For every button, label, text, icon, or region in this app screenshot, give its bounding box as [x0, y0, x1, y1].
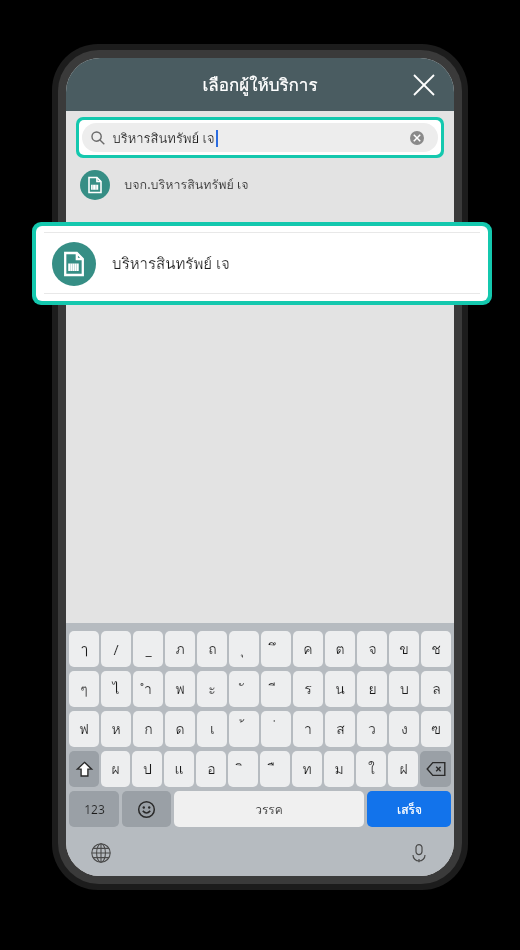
- button[interactable]: _: [133, 631, 163, 667]
- button[interactable]: ค: [293, 631, 323, 667]
- staticText: ท: [302, 758, 312, 780]
- button[interactable]: ่: [261, 711, 291, 747]
- button[interactable]: ร: [293, 671, 323, 707]
- staticText: ย: [368, 678, 377, 700]
- button[interactable]: พ: [165, 671, 195, 707]
- staticText: เ: [210, 718, 215, 740]
- staticText: ใ: [368, 758, 375, 780]
- staticText: 123: [84, 801, 105, 817]
- staticText: เสร็จ: [397, 800, 422, 819]
- staticText: จ: [368, 638, 377, 660]
- button[interactable]: ี: [261, 671, 291, 707]
- button[interactable]: บจก.บริหารสินทรัพย์ เจ: [66, 164, 454, 206]
- button[interactable]: ใ: [356, 751, 386, 787]
- button[interactable]: Change keyboard language: [82, 834, 120, 872]
- staticText: ผ: [111, 758, 120, 780]
- button[interactable]: ส: [325, 711, 355, 747]
- button[interactable]: ฝ: [388, 751, 418, 787]
- staticText: บริหารสินทรัพย์ เจ: [112, 252, 230, 276]
- staticText: า: [304, 718, 312, 740]
- button[interactable]: บริหารสินทรัพย์ เจ: [82, 123, 438, 152]
- staticText: ช: [431, 638, 441, 660]
- button[interactable]: Clear text: [405, 126, 429, 150]
- button[interactable]: ะ: [197, 671, 227, 707]
- button[interactable]: ฃ: [421, 711, 451, 747]
- button[interactable]: Close: [402, 63, 446, 107]
- button[interactable]: ม: [324, 751, 354, 787]
- staticText: ต: [335, 638, 345, 660]
- staticText: ป: [143, 758, 152, 780]
- staticText: ๅ: [81, 638, 88, 660]
- staticText: ส: [336, 718, 345, 740]
- button[interactable]: ก: [133, 711, 163, 747]
- staticText: ฃ: [431, 718, 441, 740]
- button[interactable]: ิ: [228, 751, 258, 787]
- button[interactable]: น: [325, 671, 355, 707]
- staticText: บริหารสินทรัพย์ เจ: [112, 128, 215, 149]
- staticText: ภ: [175, 638, 185, 660]
- staticText: ำ: [144, 678, 152, 700]
- button[interactable]: ุ: [229, 631, 259, 667]
- staticText: ล: [432, 678, 441, 700]
- button[interactable]: ฟ: [69, 711, 99, 747]
- staticText: เลือกผู้ให้บริการ: [202, 71, 318, 98]
- button[interactable]: วรรค: [174, 791, 364, 827]
- staticText: ฝ: [399, 758, 408, 780]
- button[interactable]: ท: [292, 751, 322, 787]
- button[interactable]: Emoji: [122, 791, 171, 827]
- button[interactable]: ป: [132, 751, 162, 787]
- button[interactable]: ง: [389, 711, 419, 747]
- button[interactable]: Voice input: [400, 834, 438, 872]
- staticText: วรรค: [255, 800, 283, 819]
- staticText: ม: [334, 758, 344, 780]
- staticText: ค: [303, 638, 313, 660]
- staticText: อ: [207, 758, 216, 780]
- button[interactable]: เ: [197, 711, 227, 747]
- staticText: ไ: [112, 678, 120, 700]
- button[interactable]: ย: [357, 671, 387, 707]
- button[interactable]: า: [293, 711, 323, 747]
- staticText: น: [335, 678, 345, 700]
- button[interactable]: ด: [165, 711, 195, 747]
- button[interactable]: ั: [229, 671, 259, 707]
- staticText: ก: [144, 718, 153, 740]
- staticText: แ: [174, 758, 184, 780]
- button[interactable]: ไ: [101, 671, 131, 707]
- button[interactable]: ึ: [261, 631, 291, 667]
- button[interactable]: ต: [325, 631, 355, 667]
- staticText: ร: [304, 678, 312, 700]
- staticText: ฟ: [79, 718, 89, 740]
- staticText: ห: [111, 718, 121, 740]
- staticText: ด: [175, 718, 185, 740]
- button[interactable]: 123: [69, 791, 119, 827]
- staticText: บจก.บริหารสินทรัพย์ เจ: [124, 175, 249, 195]
- button[interactable]: ำ: [133, 671, 163, 707]
- button[interactable]: บ: [389, 671, 419, 707]
- staticText: ง: [401, 718, 408, 740]
- button[interactable]: ช: [421, 631, 451, 667]
- button[interactable]: ถ: [197, 631, 227, 667]
- button[interactable]: เสร็จ: [367, 791, 451, 827]
- staticText: ะ: [208, 678, 216, 700]
- button[interactable]: ื: [260, 751, 290, 787]
- staticText: ข: [399, 638, 409, 660]
- button[interactable]: ห: [101, 711, 131, 747]
- button[interactable]: ผ: [101, 751, 130, 787]
- staticText: บ: [400, 678, 409, 700]
- button[interactable]: ๅ: [69, 631, 99, 667]
- button[interactable]: อ: [196, 751, 226, 787]
- button[interactable]: จ: [357, 631, 387, 667]
- button[interactable]: แ: [164, 751, 194, 787]
- button[interactable]: /: [101, 631, 131, 667]
- button[interactable]: ล: [421, 671, 451, 707]
- staticText: ถ: [208, 638, 217, 660]
- button[interactable]: บริหารสินทรัพย์ เจ: [36, 226, 488, 301]
- button[interactable]: Backspace: [420, 751, 451, 787]
- button[interactable]: ว: [357, 711, 387, 747]
- button[interactable]: ภ: [165, 631, 195, 667]
- button[interactable]: Shift: [69, 751, 99, 787]
- button[interactable]: ข: [389, 631, 419, 667]
- button[interactable]: ้: [229, 711, 259, 747]
- button[interactable]: ๆ: [69, 671, 99, 707]
- staticText: ว: [368, 718, 376, 740]
